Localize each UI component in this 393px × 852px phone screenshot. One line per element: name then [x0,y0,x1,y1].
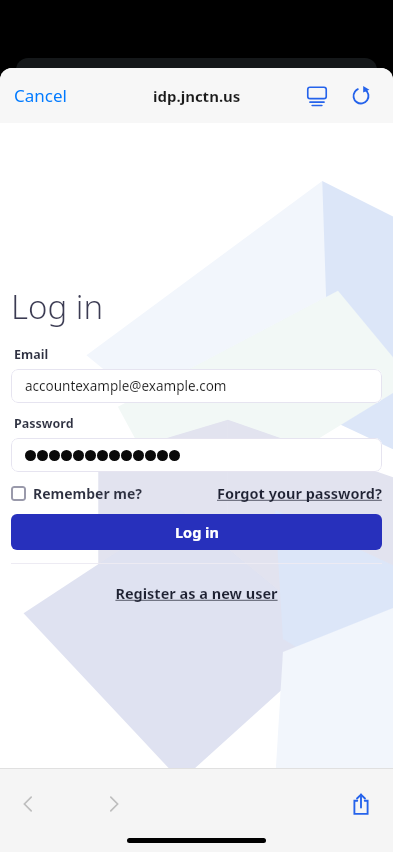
button[interactable]: Forgot your password? [217,483,382,503]
staticText: Email [14,346,49,363]
staticText: Cancel [14,84,67,107]
button[interactable]: accountexample@example.com [11,369,382,403]
button[interactable]: Log in [11,514,382,550]
button[interactable] [11,438,382,472]
button[interactable]: Register as a new user [115,583,278,603]
button[interactable]: Back [8,784,48,824]
staticText: Register as a new user [115,583,278,603]
staticText: Log in [11,284,104,329]
staticText: idp.jnctn.us [153,86,241,106]
staticText: accountexample@example.com [25,377,227,395]
button[interactable]: Share [341,784,381,824]
staticText: Forgot your password? [217,483,382,503]
staticText: Remember me? [33,484,142,503]
staticText: Password [14,415,74,432]
button[interactable]: Forward [94,784,134,824]
staticText: Log in [175,522,219,542]
button[interactable]: Reader view [297,76,337,116]
button[interactable]: Cancel [0,76,81,115]
button[interactable]: Remember me? [11,484,142,503]
button[interactable]: Reload [341,76,381,116]
